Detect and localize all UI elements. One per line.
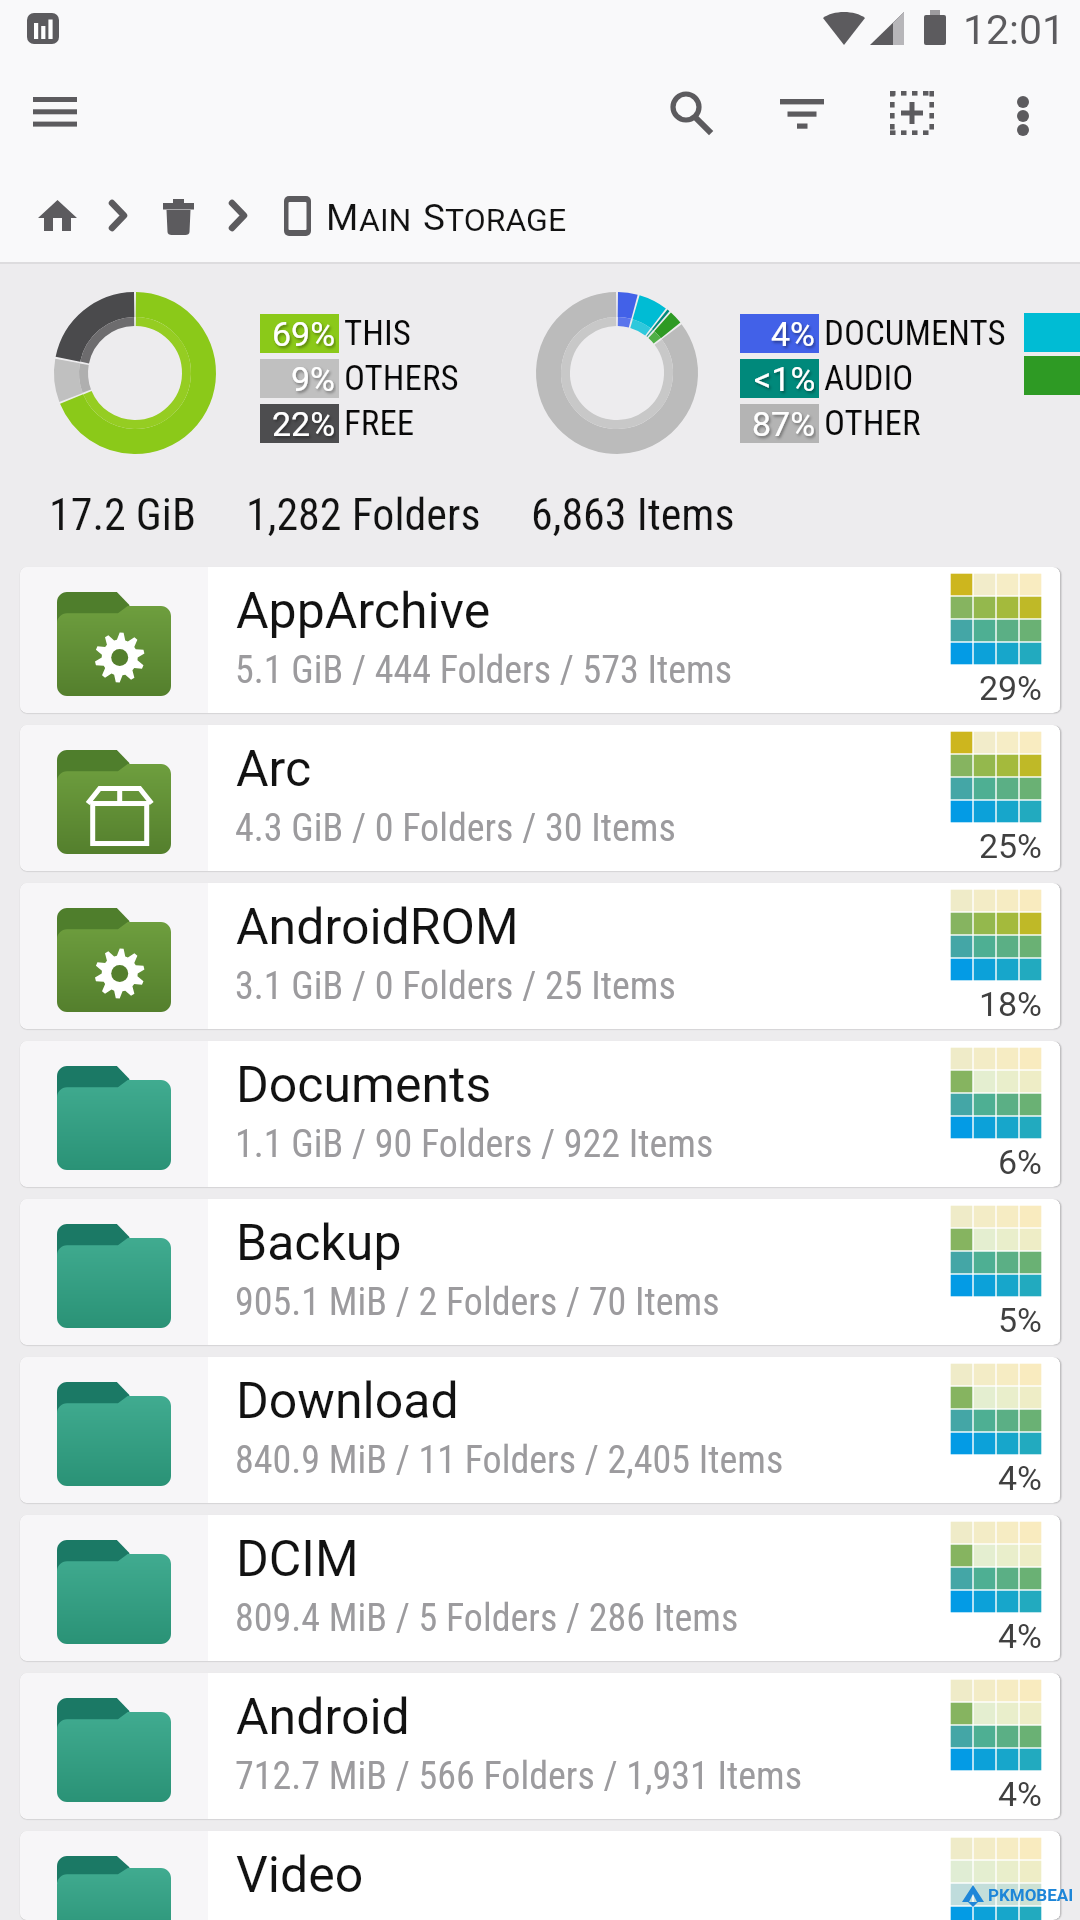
staticText: 4.3 GiB / 0 Folders / 30 Items bbox=[235, 806, 676, 851]
button[interactable]: 69% bbox=[260, 314, 339, 353]
staticText: 3.1 GiB / 0 Folders / 25 Items bbox=[235, 964, 676, 1009]
staticText: 12:01 bbox=[963, 6, 1066, 54]
staticText: 5.1 GiB / 444 Folders / 573 Items bbox=[235, 648, 733, 693]
staticText: 840.9 MiB / 11 Folders / 2,405 Items bbox=[235, 1438, 784, 1483]
button[interactable]: Search bbox=[641, 68, 741, 156]
button[interactable]: Documents bbox=[20, 1041, 1060, 1187]
staticText: AppArchive bbox=[236, 582, 491, 641]
staticText: <1% bbox=[754, 359, 816, 398]
staticText: 4% bbox=[920, 1458, 1042, 1498]
button[interactable]: 9% bbox=[260, 359, 339, 398]
staticText: 905.1 MiB / 2 Folders / 70 Items bbox=[235, 1280, 720, 1325]
staticText: 17.2 GiB bbox=[49, 489, 196, 541]
button[interactable]: 4% bbox=[740, 314, 819, 353]
staticText: Download bbox=[236, 1372, 459, 1431]
staticText: AndroidROM bbox=[236, 898, 519, 957]
staticText: 6,863 Items bbox=[531, 489, 735, 541]
button[interactable]: Arc bbox=[20, 725, 1060, 871]
staticText: S bbox=[423, 196, 445, 239]
staticText: 5% bbox=[920, 1300, 1042, 1340]
button[interactable]: 22% bbox=[260, 404, 339, 443]
staticText: 29% bbox=[920, 668, 1042, 708]
button[interactable]: <1% bbox=[740, 359, 819, 398]
staticText: 25% bbox=[920, 826, 1042, 866]
staticText: AIN bbox=[359, 201, 412, 239]
staticText: DOCUMENTS bbox=[824, 313, 1006, 354]
staticText: 69% bbox=[272, 314, 336, 353]
staticText: FREE bbox=[344, 403, 415, 444]
button[interactable]: Backup bbox=[20, 1199, 1060, 1345]
button[interactable]: Video bbox=[20, 1831, 1060, 1920]
staticText: THIS bbox=[344, 313, 411, 354]
staticText: Documents bbox=[236, 1056, 492, 1115]
staticText: 809.4 MiB / 5 Folders / 286 Items bbox=[235, 1596, 739, 1641]
staticText: 18% bbox=[920, 984, 1042, 1024]
staticText: 6% bbox=[920, 1142, 1042, 1182]
staticText: Backup bbox=[236, 1214, 402, 1273]
staticText: Android bbox=[236, 1688, 410, 1747]
staticText: 4% bbox=[920, 1616, 1042, 1656]
button[interactable]: DCIM bbox=[20, 1515, 1060, 1661]
staticText: 712.7 MiB / 566 Folders / 1,931 Items bbox=[235, 1754, 803, 1799]
staticText: 4% bbox=[771, 314, 816, 353]
button[interactable]: Sort bbox=[752, 68, 852, 156]
staticText: TORAGE bbox=[445, 201, 567, 239]
staticText: AUDIO bbox=[824, 358, 914, 399]
button[interactable]: AndroidROM bbox=[20, 883, 1060, 1029]
staticText: Arc bbox=[236, 740, 312, 799]
button[interactable]: Download bbox=[20, 1357, 1060, 1503]
staticText: 9% bbox=[291, 359, 336, 398]
button[interactable]: AppArchive bbox=[20, 567, 1060, 713]
staticText: 87% bbox=[752, 404, 816, 443]
button[interactable]: Menu bbox=[5, 68, 105, 156]
button[interactable]: Android bbox=[20, 1673, 1060, 1819]
staticText: Video bbox=[236, 1846, 364, 1905]
staticText: 1,282 Folders bbox=[246, 489, 481, 541]
staticText: 22% bbox=[272, 404, 336, 443]
staticText: OTHERS bbox=[344, 358, 459, 399]
button[interactable]: More options bbox=[973, 68, 1073, 156]
staticText: 4% bbox=[920, 1774, 1042, 1814]
button[interactable]: Select all bbox=[863, 68, 963, 156]
button[interactable]: M bbox=[0, 156, 1080, 262]
button[interactable]: 87% bbox=[740, 404, 819, 443]
staticText: M bbox=[326, 196, 359, 239]
staticText: PKMOBEAI bbox=[988, 1885, 1074, 1905]
staticText: DCIM bbox=[236, 1530, 359, 1589]
staticText: 1.1 GiB / 90 Folders / 922 Items bbox=[235, 1122, 714, 1167]
staticText: OTHER bbox=[824, 403, 921, 444]
